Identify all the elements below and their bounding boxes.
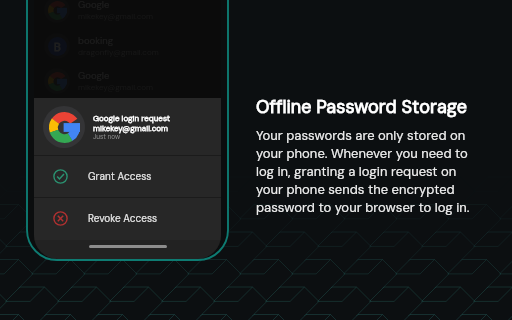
staticText: Google [78, 70, 110, 82]
staticText: Your passwords are only stored on your p… [256, 127, 474, 216]
staticText: Google [78, 0, 110, 11]
staticText: Offline Password Storage [256, 95, 468, 118]
staticText: Grant Access [88, 170, 152, 183]
staticText: booking [78, 35, 114, 47]
staticText: Just now [93, 133, 121, 141]
button[interactable]: Revoke Access [34, 198, 221, 239]
staticText: Google login request [93, 113, 171, 123]
button[interactable]: Grant Access [34, 156, 221, 197]
button[interactable]: Google login request [34, 98, 221, 155]
staticText: mikekey@gmail.com [93, 123, 169, 133]
staticText: Revoke Access [88, 212, 158, 225]
staticText: B [54, 40, 61, 54]
